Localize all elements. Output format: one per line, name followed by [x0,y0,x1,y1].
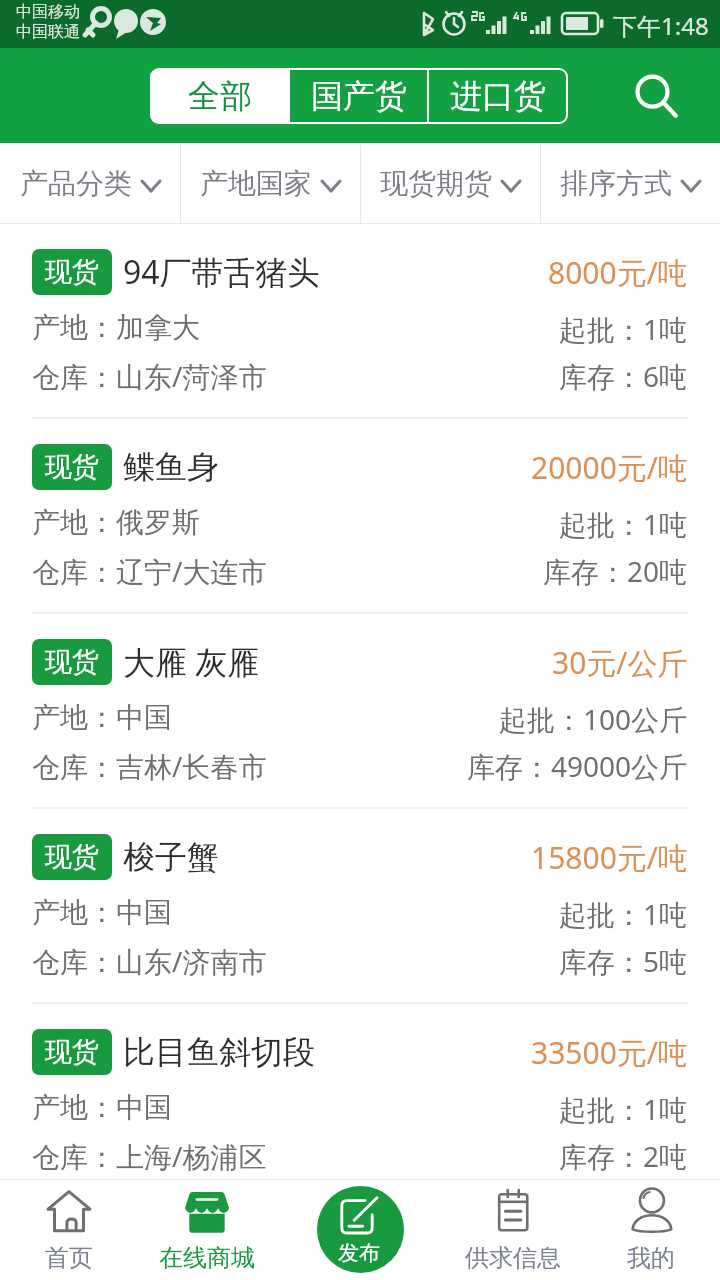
staticText: 产地：中国 [32,1090,172,1125]
staticText: 中国联通 [16,22,80,42]
staticText: 大雁 灰雁 [123,640,260,684]
staticText: 产地：中国 [32,895,172,930]
button[interactable]: 首页 [0,1179,138,1280]
button[interactable]: Search [614,54,698,138]
button[interactable]: 供求信息 [444,1179,582,1280]
staticText: 30元/公斤 [552,642,688,683]
staticText: 进口货 [450,76,546,116]
staticText: 仓库：山东/菏泽市 [32,357,267,395]
staticText: 现货 [45,255,99,289]
staticText: 现货 [45,840,99,874]
staticText: 仓库：吉林/长春市 [32,747,267,785]
button[interactable]: 现货期货 [361,143,540,224]
staticText: 库存：20吨 [543,552,688,590]
staticText: 仓库：上海/杨浦区 [32,1137,267,1175]
staticText: 产地：加拿大 [32,310,200,345]
staticText: 起批：1吨 [559,505,688,543]
button[interactable]: 进口货 [429,70,566,122]
staticText: 库存：5吨 [559,942,688,980]
staticText: 起批：1吨 [559,1090,688,1128]
button[interactable]: 在线商城 [138,1179,276,1280]
button[interactable]: 现货 [0,224,720,419]
staticText: 15800元/吨 [531,837,688,878]
staticText: 库存：49000公斤 [467,747,688,785]
staticText: 库存：2吨 [559,1137,688,1175]
staticText: 产地国家 [200,166,312,201]
button[interactable]: 国产货 [290,70,427,122]
button[interactable]: 现货 [0,1004,720,1199]
staticText: 排序方式 [560,166,672,201]
staticText: 产地：中国 [32,700,172,735]
staticText: 20000元/吨 [531,447,688,488]
button[interactable]: 全部 [152,70,288,122]
button[interactable]: 排序方式 [541,143,720,224]
staticText: 现货 [45,450,99,484]
staticText: 库存：6吨 [559,357,688,395]
staticText: 8000元/吨 [548,252,688,293]
staticText: 产品分类 [20,166,132,201]
staticText: 起批：100公斤 [499,700,688,738]
staticText: 梭子蟹 [123,837,219,877]
staticText: 国产货 [311,76,407,116]
staticText: 94厂带舌猪头 [123,250,320,294]
staticText: 中国移动 [16,2,80,22]
staticText: 起批：1吨 [559,310,688,348]
staticText: 发布 [338,1240,380,1266]
staticText: 比目鱼斜切段 [123,1032,315,1072]
staticText: 起批：1吨 [559,895,688,933]
button[interactable]: 现货 [0,614,720,809]
button[interactable]: 产品分类 [0,143,180,224]
staticText: 下午1:48 [613,9,709,42]
button[interactable]: 我的 [582,1179,720,1280]
staticText: 我的 [627,1243,675,1273]
staticText: 仓库：辽宁/大连市 [32,552,267,590]
button[interactable]: 现货 [0,419,720,614]
staticText: 仓库：山东/济南市 [32,942,267,980]
staticText: 现货 [45,1035,99,1069]
staticText: 鲽鱼身 [123,447,219,487]
staticText: 33500元/吨 [531,1032,688,1073]
staticText: 在线商城 [159,1243,255,1273]
staticText: 现货 [45,645,99,679]
button[interactable]: 发布 [317,1186,404,1273]
staticText: 现货期货 [380,166,492,201]
staticText: 全部 [188,76,252,116]
staticText: 供求信息 [465,1243,561,1273]
button[interactable]: 现货 [0,809,720,1004]
button[interactable]: 产地国家 [181,143,360,224]
staticText: 产地：俄罗斯 [32,505,200,540]
staticText: 首页 [45,1243,93,1273]
